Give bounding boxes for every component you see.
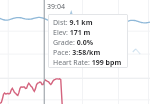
staticText: Pace: 3:58/km <box>53 48 101 58</box>
staticText: Dist: 9.1 km <box>53 18 93 28</box>
staticText: Grade: 0.0% <box>53 38 94 48</box>
staticText: Elev: 171 m <box>53 28 91 38</box>
staticText: Heart Rate: 199 bpm <box>53 58 122 68</box>
button[interactable]: 39:04 <box>47 2 65 12</box>
button[interactable]: Workout data point details <box>48 14 128 68</box>
